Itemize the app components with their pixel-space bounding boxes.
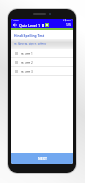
staticText: 1/5 xyxy=(66,23,71,27)
staticText: क. क्रिया ख. संज्ञा ग. सर्वनाम xyxy=(14,42,46,46)
staticText: क. उत्तर 3 xyxy=(21,70,33,74)
button[interactable]: क. उत्तर 2 xyxy=(11,58,73,67)
staticText: क. उत्तर 1 xyxy=(21,52,33,56)
button[interactable]: क. उत्तर 1 xyxy=(11,49,73,58)
button[interactable]: Question count xyxy=(64,23,73,27)
staticText: 10:30 xyxy=(13,19,19,22)
button[interactable]: NEXT xyxy=(11,153,73,164)
staticText: क. उत्तर 2 xyxy=(21,61,33,65)
staticText: Quiz Level 1 xyxy=(19,23,41,28)
staticText: NEXT xyxy=(38,156,47,161)
staticText: ▾ ▮ 88% xyxy=(63,19,71,22)
staticText: Hindi Spelling Test xyxy=(14,33,45,37)
button[interactable]: क. उत्तर 3 xyxy=(11,67,73,76)
button[interactable]: Back xyxy=(11,22,19,28)
